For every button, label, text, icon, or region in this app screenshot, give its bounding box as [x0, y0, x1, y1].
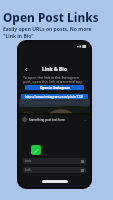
- staticText: Link: [25, 168, 31, 172]
- button[interactable]: Open in Instagram: [25, 85, 84, 90]
- button[interactable]: Edit: [31, 145, 41, 155]
- staticText: https://www.instagram.com/p/abc123/: [25, 95, 84, 99]
- staticText: ⋯: [84, 118, 87, 121]
- button[interactable]: Link: [25, 158, 84, 164]
- staticText: To open the link in the Instagram post, …: [23, 75, 86, 84]
- staticText: Easily open URLs on posts, No more "Link…: [3, 26, 92, 39]
- staticText: Open in Instagram: [40, 86, 70, 90]
- button[interactable]: Back: [23, 66, 29, 72]
- staticText: Open Post Links: [3, 9, 99, 25]
- staticText: Link: [25, 159, 31, 163]
- button[interactable]: Link: [25, 167, 84, 173]
- staticText: Something post text here: [29, 118, 65, 122]
- staticText: Link & Bio: [42, 66, 67, 73]
